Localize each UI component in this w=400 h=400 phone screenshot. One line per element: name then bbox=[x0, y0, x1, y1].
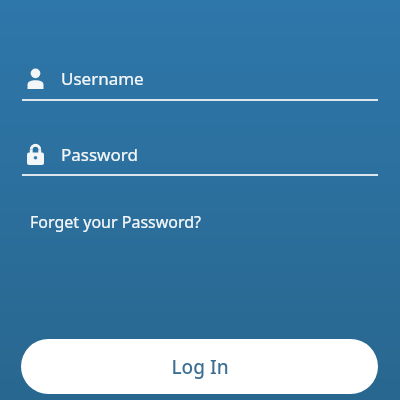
staticText: Log In bbox=[171, 354, 229, 380]
staticText: Username bbox=[61, 67, 144, 90]
button[interactable]: Username bbox=[22, 62, 378, 94]
button[interactable]: Forget your Password? bbox=[22, 205, 210, 239]
button[interactable]: Password bbox=[22, 138, 378, 170]
staticText: Forget your Password? bbox=[30, 211, 202, 233]
button[interactable]: Log In bbox=[21, 339, 378, 394]
staticText: Password bbox=[61, 143, 138, 166]
